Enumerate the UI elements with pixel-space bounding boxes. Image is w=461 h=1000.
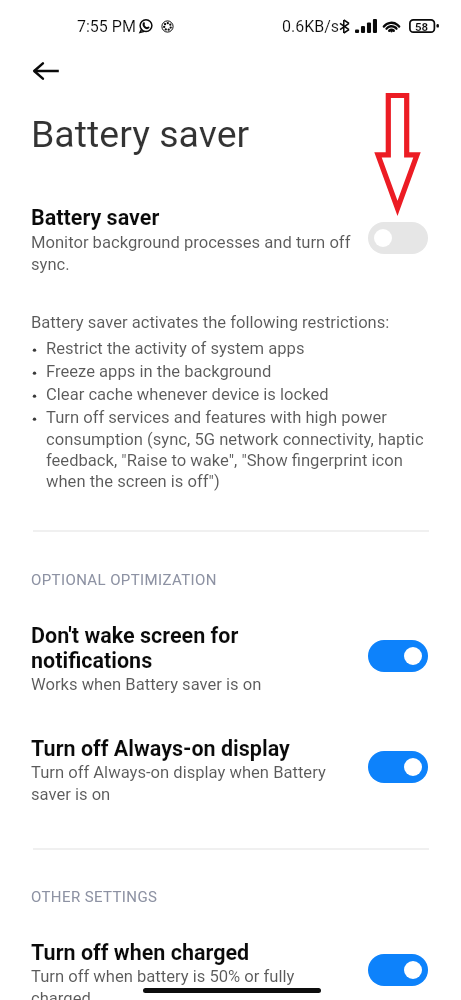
staticText: 7:55 PM (77, 17, 136, 36)
staticText: Monitor background processes and turn of… (31, 233, 352, 274)
staticText: Turn off services and features with high… (46, 408, 432, 491)
staticText: Battery saver (31, 112, 250, 156)
button[interactable]: Toggle off (368, 222, 428, 254)
staticText: Turn off Always-on display (31, 736, 290, 761)
staticText: 58 (415, 20, 429, 33)
staticText: Turn off Always-on display when Battery … (31, 763, 352, 804)
staticText: Restrict the activity of system apps (46, 339, 432, 358)
button[interactable]: Toggle on (368, 954, 428, 986)
button[interactable]: Toggle on (368, 640, 428, 672)
button[interactable]: Toggle on (368, 751, 428, 783)
staticText: 0.6KB/s (282, 17, 340, 36)
staticText: Turn off when battery is 50% or fully ch… (31, 967, 352, 1000)
staticText: Turn off when charged (31, 940, 250, 965)
staticText: OPTIONAL OPTIMIZATION (31, 571, 217, 589)
staticText: Freeze apps in the background (46, 362, 432, 381)
staticText: OTHER SETTINGS (31, 888, 158, 906)
staticText: Battery saver activates the following re… (31, 313, 390, 332)
staticText: Don't wake screen for notifications (31, 623, 352, 673)
staticText: Clear cache whenever device is locked (46, 385, 432, 404)
staticText: Works when Battery saver is on (31, 675, 262, 694)
button[interactable]: Back (25, 50, 69, 94)
staticText: Battery saver (31, 205, 160, 230)
